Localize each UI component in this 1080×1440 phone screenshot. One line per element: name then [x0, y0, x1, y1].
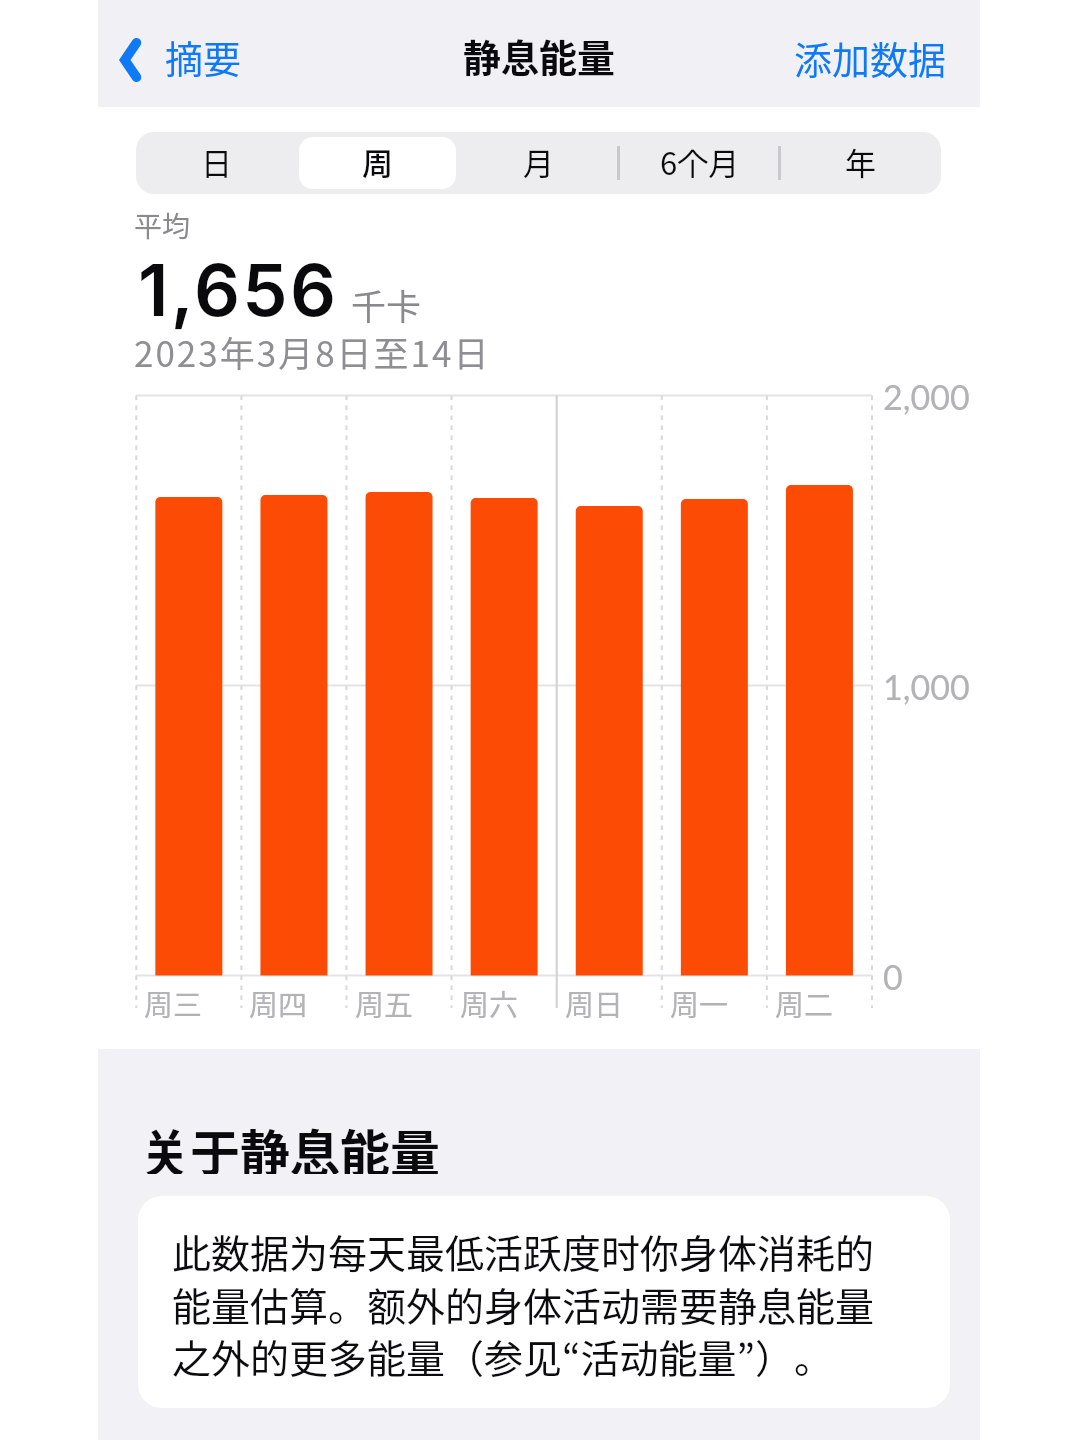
button[interactable]: 日 [136, 132, 297, 194]
staticText: 周二 [775, 982, 834, 1024]
button[interactable]: 月 [458, 132, 619, 194]
staticText: 周五 [355, 982, 414, 1024]
staticText: 千卡 [351, 279, 422, 327]
staticText: 1,000 [883, 666, 970, 707]
staticText: 周三 [144, 982, 203, 1024]
staticText: 摘要 [165, 29, 242, 84]
staticText: 2023年3月8日至14日 [134, 326, 491, 377]
staticText: 周一 [670, 982, 729, 1024]
staticText: 2,000 [883, 376, 970, 417]
staticText: 平均 [134, 205, 191, 246]
staticText: 周六 [460, 982, 519, 1024]
staticText: 0 [883, 956, 903, 997]
staticText: 关于静息能量 [140, 1114, 440, 1174]
staticText: 静息能量 [463, 28, 616, 83]
staticText: 周四 [249, 982, 308, 1024]
button[interactable]: 年 [780, 132, 941, 194]
staticText: 此数据为每天最低活跃度时你身体消耗的 能量估算。额外的身体活动需要静息能量 之外… [172, 1223, 875, 1384]
button[interactable]: 摘要 [120, 26, 242, 86]
staticText: 添加数据 [794, 30, 947, 85]
button[interactable]: 6个月 [619, 132, 780, 194]
staticText: 月 [523, 139, 554, 184]
staticText: 年 [845, 139, 876, 184]
button[interactable]: 周 [297, 132, 458, 194]
staticText: 6个月 [660, 139, 740, 184]
staticText: 周日 [565, 982, 624, 1024]
staticText: 1,656 [138, 246, 339, 333]
staticText: 周 [362, 139, 393, 184]
staticText: 日 [201, 139, 232, 184]
button[interactable]: 添加数据 [794, 30, 947, 85]
